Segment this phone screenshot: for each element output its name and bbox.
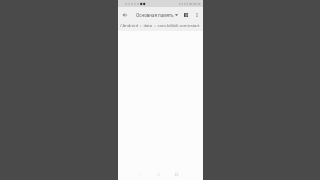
button[interactable]: Основная память — [136, 7, 180, 22]
button[interactable]: Back — [118, 7, 131, 22]
button[interactable]: Home — [154, 170, 163, 179]
button[interactable]: / Android › data › com.bilibili.comicsta… — [118, 22, 203, 31]
button[interactable]: Grid view — [180, 7, 191, 22]
button[interactable]: Recents — [172, 170, 181, 179]
staticText: Основная память — [136, 12, 174, 18]
staticText: / Android › data › com.bilibili.comicsta… — [120, 23, 200, 29]
button[interactable]: More options — [191, 7, 202, 22]
